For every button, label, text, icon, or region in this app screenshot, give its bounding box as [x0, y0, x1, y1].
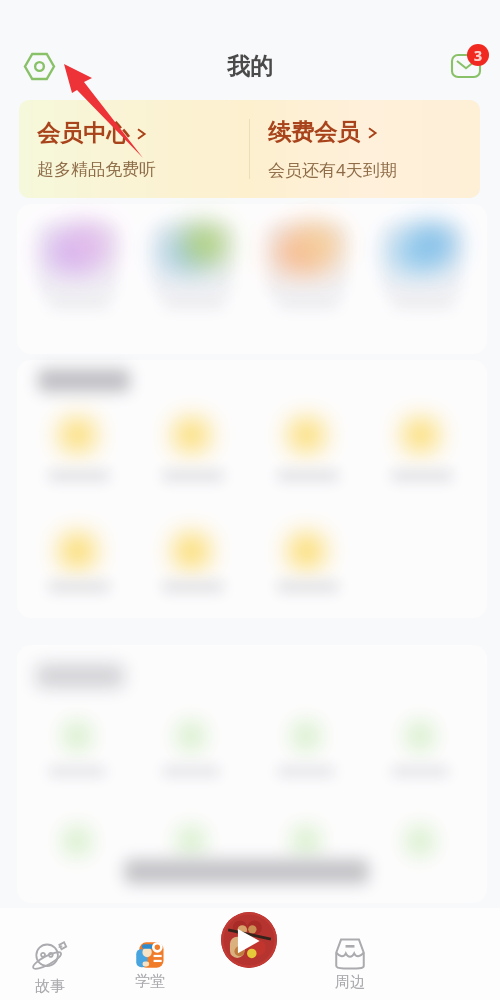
staticText: 周边 — [335, 973, 365, 992]
button[interactable]: Settings — [17, 44, 61, 88]
staticText: 会员中心 — [37, 119, 129, 148]
button[interactable]: 会员中心 — [19, 100, 249, 198]
staticText: 超多精品免费听 — [37, 159, 156, 180]
button[interactable]: Play — [221, 912, 277, 968]
button[interactable]: 周边 — [300, 938, 400, 992]
staticText: 我的 — [227, 52, 273, 81]
button[interactable]: 续费会员 — [250, 100, 480, 198]
staticText: 3 — [474, 46, 483, 65]
staticText: 故事 — [35, 977, 65, 996]
staticText: 会员还有4天到期 — [268, 158, 397, 181]
button[interactable]: Messages — [444, 34, 492, 82]
button[interactable]: 故事 — [0, 938, 100, 996]
button[interactable]: 学堂 — [100, 938, 200, 991]
staticText: 学堂 — [135, 972, 165, 991]
staticText: 续费会员 — [268, 118, 360, 147]
